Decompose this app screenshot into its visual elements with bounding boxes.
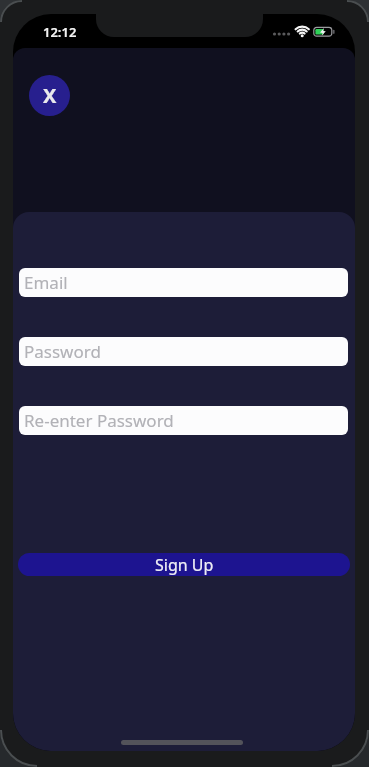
staticText: Re-enter Password [24,409,174,432]
button[interactable]: Sign Up [18,553,350,576]
button[interactable]: Password [19,337,348,366]
staticText: 12:12 [43,23,77,41]
button[interactable]: Email [19,268,348,297]
button[interactable]: Re-enter Password [19,406,348,435]
staticText: X [43,82,57,109]
staticText: Sign Up [155,554,214,576]
button[interactable]: X [29,75,70,116]
staticText: Email [24,271,68,294]
staticText: Password [24,340,101,363]
